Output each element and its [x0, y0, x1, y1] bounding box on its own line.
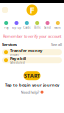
- staticText: Remember to verify your account: [3, 33, 61, 39]
- staticText: See all: [51, 42, 62, 47]
- staticText: Pay a bill: [10, 56, 26, 61]
- button[interactable]: See all: [51, 42, 62, 47]
- button[interactable]: START: [23, 71, 40, 80]
- button[interactable]: Logo: [26, 4, 37, 15]
- staticText: Top up: [11, 26, 21, 29]
- staticText: Transfer money: [10, 48, 42, 53]
- staticText: START: [24, 72, 40, 79]
- staticText: More: [54, 26, 61, 29]
- staticText: Send: [44, 26, 51, 29]
- button[interactable]: Menu: [2, 7, 8, 13]
- staticText: Bills: [34, 26, 40, 29]
- button[interactable]: Transfer money: [0, 49, 64, 55]
- staticText: Pay: [4, 26, 8, 29]
- staticText: Tap to begin your journey: [5, 82, 59, 87]
- staticText: Need help?: [20, 89, 39, 95]
- staticText: F: [29, 4, 34, 16]
- staticText: Cards: [23, 26, 30, 29]
- staticText: Services: [2, 42, 17, 47]
- staticText: Scheduled: [10, 61, 25, 65]
- staticText: Instant: [10, 53, 19, 57]
- button[interactable]: Pay a bill: [0, 57, 64, 63]
